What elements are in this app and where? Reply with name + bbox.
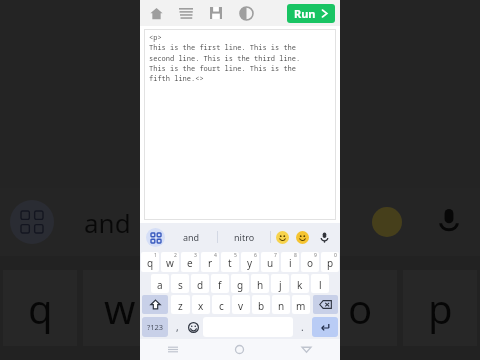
staticText: 2 bbox=[174, 252, 177, 259]
button[interactable]: r bbox=[201, 252, 219, 272]
staticText: e bbox=[187, 256, 193, 270]
button[interactable]: m bbox=[292, 295, 310, 314]
staticText: 9 bbox=[314, 252, 317, 259]
staticText: , bbox=[176, 320, 179, 334]
staticText: p bbox=[327, 256, 334, 270]
button[interactable]: n bbox=[272, 295, 290, 314]
button[interactable]: f bbox=[211, 274, 229, 293]
button[interactable]: Home bbox=[206, 339, 273, 360]
staticText: c bbox=[219, 299, 224, 313]
staticText: 6 bbox=[254, 252, 257, 259]
button[interactable]: Menu bbox=[176, 3, 196, 23]
button[interactable]: Comma bbox=[170, 315, 184, 339]
staticText: . bbox=[301, 320, 304, 334]
button[interactable]: Home bbox=[146, 3, 166, 23]
button[interactable]: z bbox=[171, 295, 190, 314]
button[interactable]: u bbox=[261, 252, 279, 272]
button[interactable]: s bbox=[171, 274, 189, 293]
staticText: q bbox=[28, 281, 53, 335]
staticText: and bbox=[84, 205, 131, 240]
staticText: 7 bbox=[274, 252, 277, 259]
button[interactable]: <p> bbox=[144, 29, 336, 220]
button[interactable]: j bbox=[271, 274, 289, 293]
staticText: This is the first line. This is the seco… bbox=[149, 43, 301, 83]
staticText: 3 bbox=[194, 252, 197, 259]
staticText: q bbox=[147, 256, 154, 270]
staticText: f bbox=[218, 278, 222, 292]
button[interactable]: Toolbar bbox=[146, 228, 165, 247]
button[interactable]: Emoji bbox=[276, 231, 289, 244]
staticText: <p> bbox=[149, 33, 162, 43]
button[interactable]: b bbox=[252, 295, 270, 314]
staticText: 0 bbox=[334, 252, 337, 259]
staticText: m bbox=[296, 299, 306, 313]
staticText: t bbox=[228, 256, 232, 270]
button[interactable]: Backspace bbox=[313, 295, 338, 314]
staticText: i bbox=[275, 281, 286, 335]
staticText: g bbox=[237, 278, 244, 292]
button[interactable]: v bbox=[232, 295, 250, 314]
button[interactable]: c bbox=[212, 295, 230, 314]
button[interactable]: a bbox=[151, 274, 169, 293]
staticText: 5 bbox=[234, 252, 237, 259]
button[interactable]: Recent apps bbox=[140, 339, 206, 360]
staticText: w bbox=[104, 281, 136, 335]
button[interactable]: l bbox=[311, 274, 329, 293]
staticText: j bbox=[279, 278, 282, 292]
staticText: u bbox=[267, 256, 274, 270]
button[interactable]: Theme bbox=[236, 3, 256, 23]
staticText: r bbox=[208, 256, 213, 270]
button[interactable]: nitro bbox=[218, 223, 270, 251]
button[interactable]: Emoji bbox=[296, 231, 309, 244]
staticText: o bbox=[307, 256, 314, 270]
staticText: Run bbox=[294, 6, 316, 21]
staticText: v bbox=[238, 299, 244, 313]
staticText: 1 bbox=[154, 252, 157, 259]
staticText: z bbox=[178, 299, 183, 313]
button[interactable]: Save bbox=[206, 3, 226, 23]
button[interactable]: i bbox=[281, 252, 299, 272]
button[interactable]: Run bbox=[287, 4, 335, 23]
staticText: y bbox=[247, 256, 253, 270]
staticText: n bbox=[278, 299, 285, 313]
staticText: b bbox=[258, 299, 265, 313]
button[interactable]: k bbox=[291, 274, 309, 293]
button[interactable]: w bbox=[161, 252, 179, 272]
button[interactable]: p bbox=[321, 252, 339, 272]
button[interactable]: Emoji keyboard bbox=[184, 315, 202, 339]
button[interactable]: Shift bbox=[142, 295, 168, 314]
button[interactable]: Enter bbox=[312, 317, 338, 337]
button[interactable]: g bbox=[231, 274, 249, 293]
staticText: k bbox=[297, 278, 303, 292]
staticText: x bbox=[198, 299, 204, 313]
button[interactable]: x bbox=[192, 295, 210, 314]
staticText: 8 bbox=[294, 252, 297, 259]
button[interactable]: t bbox=[221, 252, 239, 272]
staticText: e bbox=[189, 281, 212, 335]
staticText: s bbox=[178, 278, 183, 292]
staticText: a bbox=[157, 278, 163, 292]
button[interactable]: ?123 bbox=[142, 317, 168, 337]
button[interactable]: o bbox=[301, 252, 319, 272]
staticText: ?123 bbox=[147, 322, 164, 332]
button[interactable]: Voice input bbox=[316, 229, 332, 245]
button[interactable]: Back bbox=[273, 339, 340, 360]
button[interactable]: q bbox=[141, 252, 159, 272]
staticText: and bbox=[183, 231, 200, 243]
staticText: p bbox=[428, 281, 453, 335]
button[interactable]: Period bbox=[294, 315, 310, 339]
button[interactable]: e bbox=[181, 252, 199, 272]
button[interactable]: h bbox=[251, 274, 269, 293]
staticText: h bbox=[257, 278, 264, 292]
staticText: w bbox=[166, 256, 174, 270]
staticText: o bbox=[348, 281, 373, 335]
button[interactable]: y bbox=[241, 252, 259, 272]
button[interactable]: and bbox=[165, 223, 217, 251]
staticText: l bbox=[319, 278, 322, 292]
staticText: 4 bbox=[214, 252, 217, 259]
staticText: i bbox=[289, 256, 292, 270]
staticText: d bbox=[197, 278, 204, 292]
button[interactable]: d bbox=[191, 274, 209, 293]
staticText: nitro bbox=[234, 231, 255, 243]
